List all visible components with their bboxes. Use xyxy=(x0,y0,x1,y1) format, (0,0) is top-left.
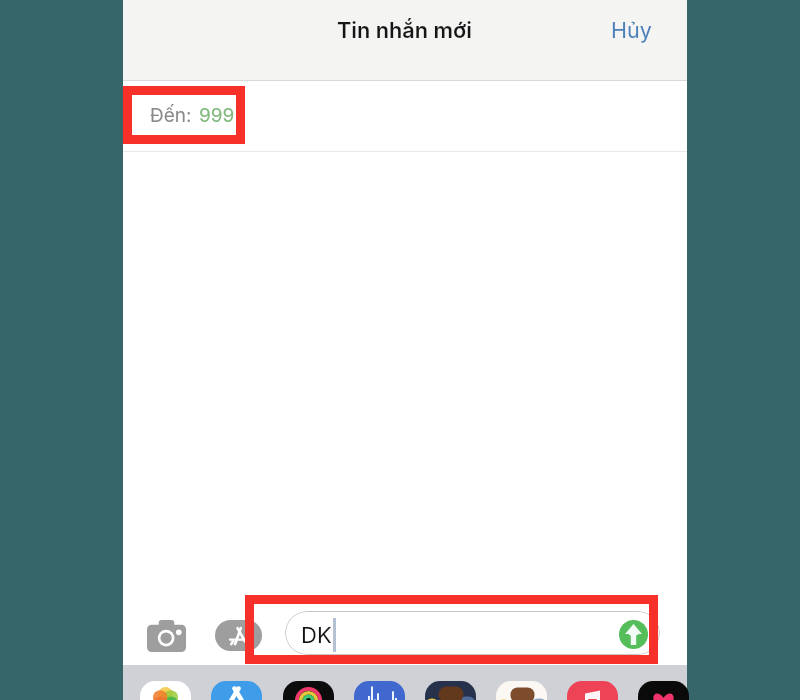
button[interactable]: Send xyxy=(619,620,648,649)
button[interactable]: Health xyxy=(638,681,689,700)
button[interactable]: App Store xyxy=(211,681,262,700)
staticText: Hủy xyxy=(611,17,652,43)
button[interactable]: Camera xyxy=(143,615,190,657)
staticText: Đến: xyxy=(150,104,192,127)
button[interactable]: Photos xyxy=(140,681,191,700)
button[interactable]: Fitness xyxy=(283,681,334,700)
staticText: 999 xyxy=(199,104,235,127)
button[interactable]: Hủy xyxy=(595,7,668,53)
button[interactable]: Memoji sticker xyxy=(496,681,547,700)
staticText: Tin nhắn mới xyxy=(337,17,472,43)
button[interactable]: App Store xyxy=(215,620,262,651)
button[interactable]: Music visualiser xyxy=(354,681,405,700)
button[interactable]: Apple Music xyxy=(567,681,618,700)
button[interactable]: Memoji sticker xyxy=(425,681,476,700)
button[interactable]: DK xyxy=(285,611,660,655)
button[interactable]: Đến: xyxy=(123,81,687,152)
staticText: DK xyxy=(301,622,332,649)
